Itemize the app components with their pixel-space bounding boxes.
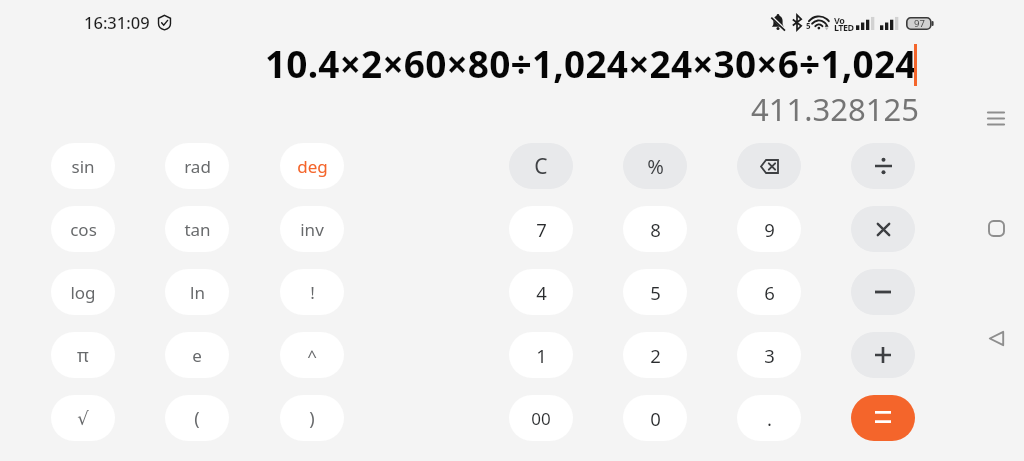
- button[interactable]: sin: [51, 143, 115, 189]
- button[interactable]: 0: [623, 395, 687, 441]
- staticText: !: [310, 281, 315, 304]
- staticText: deg: [297, 155, 328, 178]
- staticText: %: [647, 153, 664, 180]
- staticText: tan: [184, 218, 211, 241]
- staticText: 16:31:09: [84, 11, 150, 33]
- staticText: C: [534, 152, 548, 181]
- button[interactable]: π: [51, 332, 115, 378]
- button[interactable]: 4: [509, 269, 573, 315]
- staticText: 411.328125: [751, 88, 919, 130]
- other: Mobile signal: [880, 17, 900, 30]
- other: Battery 97 percent: [906, 17, 934, 30]
- button[interactable]: rad: [165, 143, 229, 189]
- button[interactable]: .: [737, 395, 801, 441]
- button[interactable]: tan: [165, 206, 229, 252]
- staticText: π: [77, 343, 89, 368]
- staticText: 00: [531, 407, 551, 430]
- button[interactable]: Equals: [851, 395, 915, 441]
- staticText: 6: [764, 280, 775, 305]
- staticText: 2: [650, 343, 661, 368]
- button[interactable]: Home: [978, 210, 1014, 246]
- button[interactable]: deg: [280, 143, 344, 189]
- button[interactable]: 5: [623, 269, 687, 315]
- button[interactable]: 8: [623, 206, 687, 252]
- staticText: sin: [71, 155, 95, 178]
- button[interactable]: 1: [509, 332, 573, 378]
- button[interactable]: C: [509, 143, 573, 189]
- button[interactable]: Backspace: [737, 143, 801, 189]
- staticText: .: [767, 406, 772, 431]
- button[interactable]: e: [165, 332, 229, 378]
- staticText: 5: [650, 280, 661, 305]
- button[interactable]: √: [51, 395, 115, 441]
- button[interactable]: inv: [280, 206, 344, 252]
- button[interactable]: 9: [737, 206, 801, 252]
- button[interactable]: 7: [509, 206, 573, 252]
- button[interactable]: cos: [51, 206, 115, 252]
- staticText: LTED: [834, 21, 854, 33]
- staticText: Vo: [834, 14, 845, 26]
- button[interactable]: Minus: [851, 269, 915, 315]
- button[interactable]: !: [280, 269, 344, 315]
- button[interactable]: 2: [623, 332, 687, 378]
- staticText: √: [77, 408, 89, 429]
- button[interactable]: %: [623, 143, 687, 189]
- staticText: log: [70, 281, 96, 304]
- staticText: inv: [300, 218, 324, 241]
- other: Wi-Fi: [809, 15, 828, 30]
- staticText: e: [192, 344, 202, 367]
- staticText: 0: [650, 406, 661, 431]
- staticText: 10.4×2×60×80÷1,024×24×30×6÷1,024: [265, 38, 917, 88]
- other: Security: [158, 15, 171, 30]
- staticText: (: [194, 406, 200, 431]
- button[interactable]: ^: [280, 332, 344, 378]
- staticText: 97: [914, 17, 925, 30]
- staticText: 7: [536, 217, 547, 242]
- staticText: 9: [764, 217, 775, 242]
- staticText: 4: [536, 280, 547, 305]
- button[interactable]: ): [280, 395, 344, 441]
- button[interactable]: 3: [737, 332, 801, 378]
- staticText: 1: [536, 343, 547, 368]
- button[interactable]: Divide: [851, 143, 915, 189]
- staticText: cos: [70, 218, 97, 241]
- staticText: ln: [190, 281, 205, 304]
- button[interactable]: 00: [509, 395, 573, 441]
- staticText: 5: [806, 20, 811, 31]
- other: Bluetooth: [792, 15, 802, 30]
- staticText: 3: [764, 343, 775, 368]
- other: Silent mode: [771, 14, 785, 30]
- button[interactable]: Plus: [851, 332, 915, 378]
- button[interactable]: log: [51, 269, 115, 315]
- staticText: 8: [650, 217, 661, 242]
- staticText: ): [309, 406, 315, 431]
- button[interactable]: ln: [165, 269, 229, 315]
- button[interactable]: (: [165, 395, 229, 441]
- staticText: ^: [307, 344, 317, 367]
- other: Mobile signal: [856, 17, 876, 30]
- button[interactable]: 6: [737, 269, 801, 315]
- button[interactable]: Back: [978, 320, 1014, 356]
- staticText: rad: [184, 155, 211, 178]
- button[interactable]: Recent apps: [978, 100, 1014, 136]
- button[interactable]: Multiply: [851, 206, 915, 252]
